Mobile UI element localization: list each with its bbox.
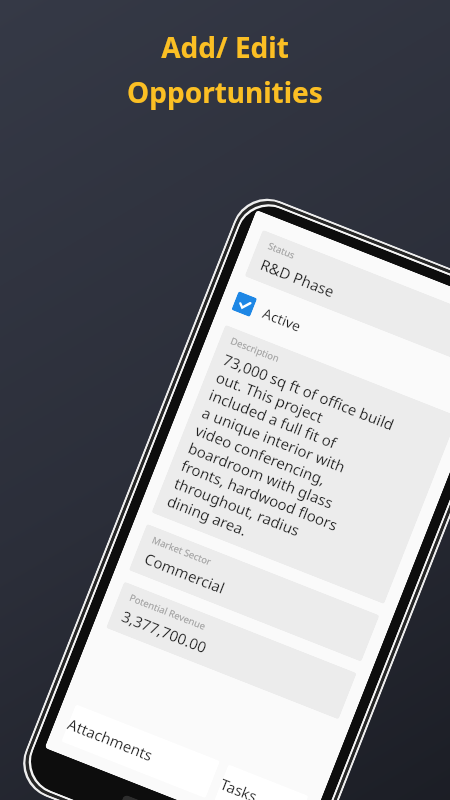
other: Active, checked <box>231 291 257 317</box>
staticText: 73,000 sq ft of office build out. This p… <box>165 349 398 576</box>
staticText: Market Sector <box>150 533 214 568</box>
staticText: Status <box>266 239 297 262</box>
staticText: Add/ Edit <box>161 28 289 66</box>
button[interactable]: Active, checked <box>231 291 450 401</box>
button[interactable]: Market Sector <box>129 524 380 662</box>
button[interactable]: Attachments <box>61 704 220 798</box>
staticText: Attachments <box>65 713 156 765</box>
staticText: Commercial <box>142 548 228 598</box>
button[interactable]: Potential Revenue <box>106 581 357 719</box>
staticText: 3,377,700.00 <box>119 606 210 657</box>
staticText: Tasks <box>217 774 260 800</box>
staticText: R&D Phase <box>258 254 338 301</box>
staticText: Description <box>229 334 282 365</box>
staticText: Opportunities <box>127 73 323 111</box>
staticText: Potential Revenue <box>128 591 208 633</box>
button[interactable]: Tasks <box>214 764 308 800</box>
button[interactable]: Status <box>244 230 450 368</box>
button[interactable]: Description <box>151 325 450 604</box>
staticText: Active <box>260 303 304 336</box>
